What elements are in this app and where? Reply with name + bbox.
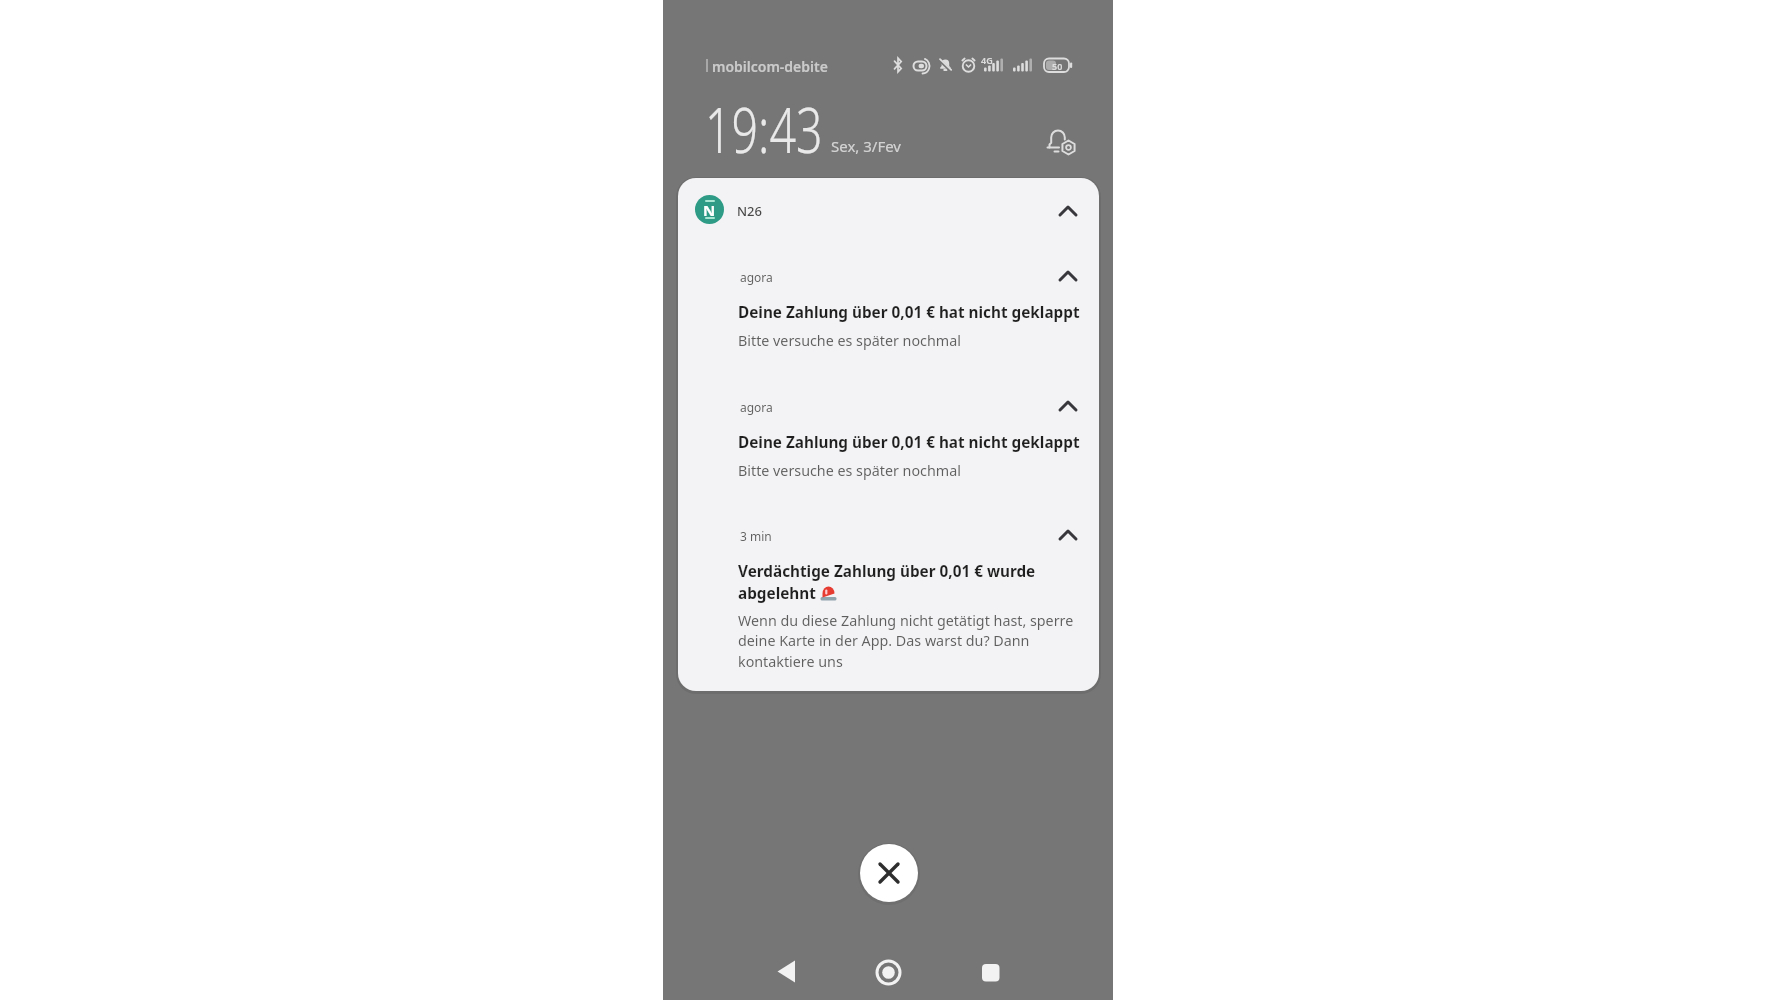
- staticText: Wenn du diese Zahlung nicht getätigt has…: [738, 611, 1074, 630]
- staticText: 50: [1052, 60, 1063, 72]
- staticText: agora: [740, 269, 773, 285]
- button[interactable]: [1054, 392, 1082, 420]
- button[interactable]: [1054, 262, 1082, 290]
- button[interactable]: [1054, 521, 1082, 549]
- staticText: Bitte versuche es später nochmal: [738, 331, 961, 350]
- button[interactable]: [860, 844, 918, 902]
- staticText: N: [703, 200, 716, 220]
- staticText: N26: [737, 202, 762, 220]
- button[interactable]: Deine Zahlung über 0,01 € hat nicht gekl…: [738, 302, 1080, 323]
- staticText: mobilcom-debite: [712, 57, 828, 76]
- button[interactable]: Deine Zahlung über 0,01 € hat nicht gekl…: [738, 432, 1080, 453]
- staticText: 19:43: [705, 87, 823, 171]
- staticText: Sex, 3/Fev: [831, 136, 901, 156]
- button[interactable]: Verdächtige Zahlung über 0,01 € wurde: [738, 561, 1036, 582]
- staticText: Bitte versuche es später nochmal: [738, 461, 961, 480]
- staticText: deine Karte in der App. Das warst du? Da…: [738, 631, 1030, 650]
- button[interactable]: [1045, 127, 1079, 161]
- staticText: agora: [740, 399, 773, 415]
- staticText: 4G: [981, 54, 993, 66]
- button[interactable]: [982, 964, 1000, 982]
- staticText: kontaktiere uns: [738, 652, 843, 671]
- button[interactable]: [1054, 197, 1082, 225]
- button[interactable]: N: [695, 195, 724, 224]
- staticText: 3 min: [740, 528, 772, 544]
- button[interactable]: [874, 958, 903, 987]
- button[interactable]: [775, 958, 799, 986]
- staticText: abgelehnt: [738, 583, 820, 604]
